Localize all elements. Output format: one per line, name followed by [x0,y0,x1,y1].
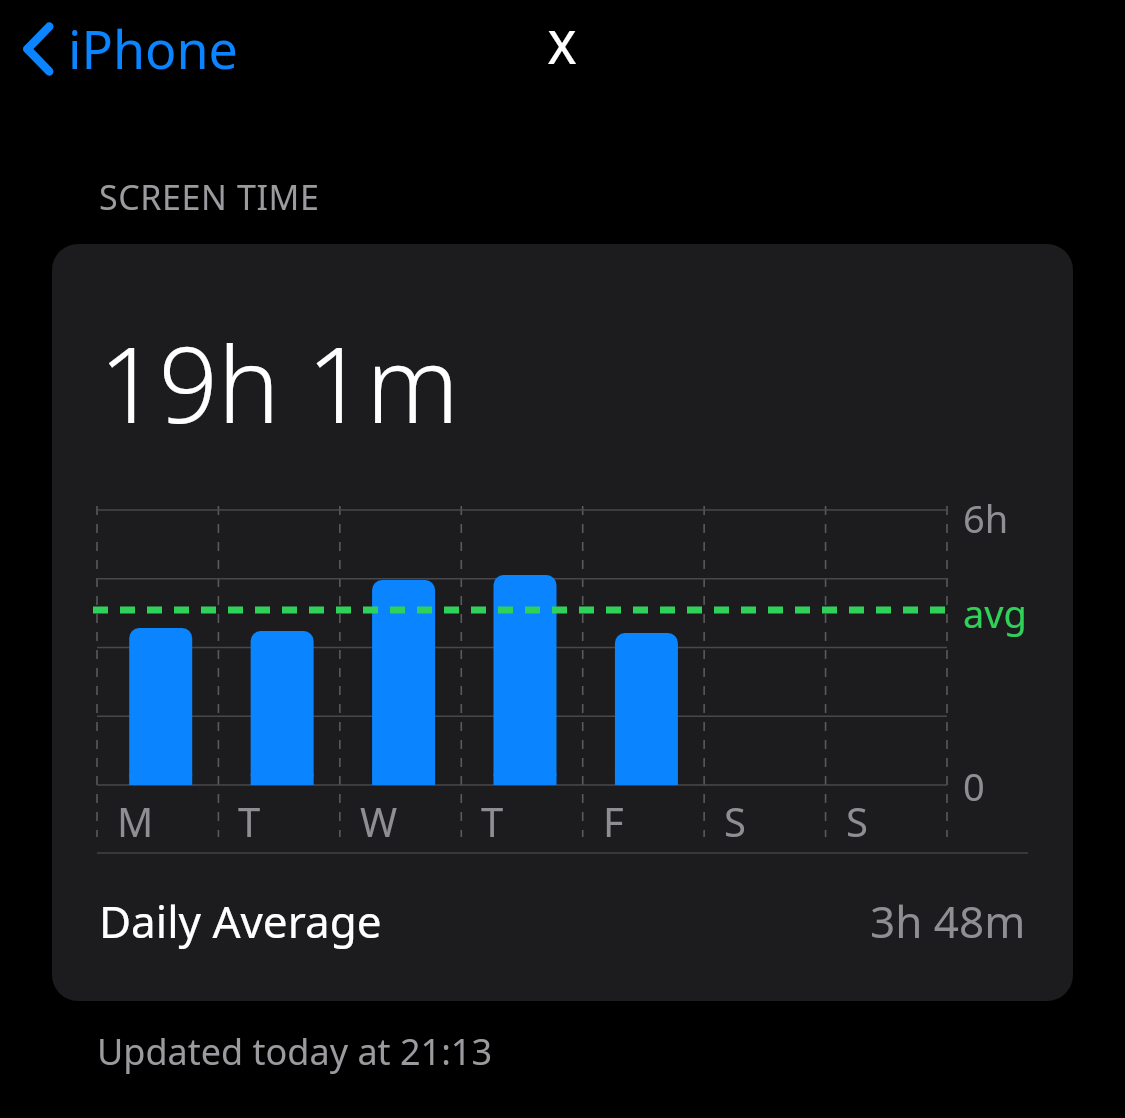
staticText: 0 [963,760,985,812]
button[interactable]: Daily Average [52,854,1073,988]
staticText: S [846,794,868,848]
staticText: Updated today at 21:13 [97,1027,492,1076]
button[interactable]: X [530,7,595,86]
staticText: F [603,794,624,848]
staticText: T [481,794,504,848]
staticText: iPhone [68,13,238,84]
staticText: W [360,794,398,848]
button[interactable]: Back [0,7,254,90]
staticText: 3h 48m [870,891,1026,951]
staticText: M [117,794,154,848]
staticText: X [548,15,577,78]
staticText: SCREEN TIME [99,174,320,220]
button[interactable]: 19h 1m [52,244,1073,1001]
staticText: 19h 1m [99,312,459,454]
staticText: avg [963,587,1027,639]
staticText: 6h [963,492,1009,544]
staticText: T [238,794,261,848]
staticText: Daily Average [99,891,382,951]
staticText: S [724,794,746,848]
other: Back [22,21,56,77]
